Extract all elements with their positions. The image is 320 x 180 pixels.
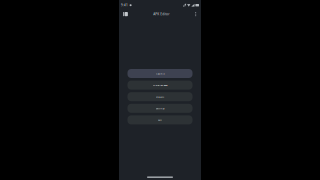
button[interactable]: Exit [127,115,192,124]
button[interactable]: Projects [127,92,192,101]
staticText: Add file [155,72,164,75]
button[interactable]: Installed apps [127,81,192,90]
staticText: APK Editor [153,12,169,16]
staticText: 9:41 [121,3,128,7]
button[interactable]: Add file [127,69,192,78]
button[interactable]: Settings [127,104,192,113]
staticText: Settings [155,107,164,110]
button[interactable]: More options [192,9,199,20]
button[interactable]: Menu [121,9,130,20]
staticText: Installed apps [152,83,167,87]
staticText: Exit [158,118,162,122]
staticText: Projects [156,95,164,98]
